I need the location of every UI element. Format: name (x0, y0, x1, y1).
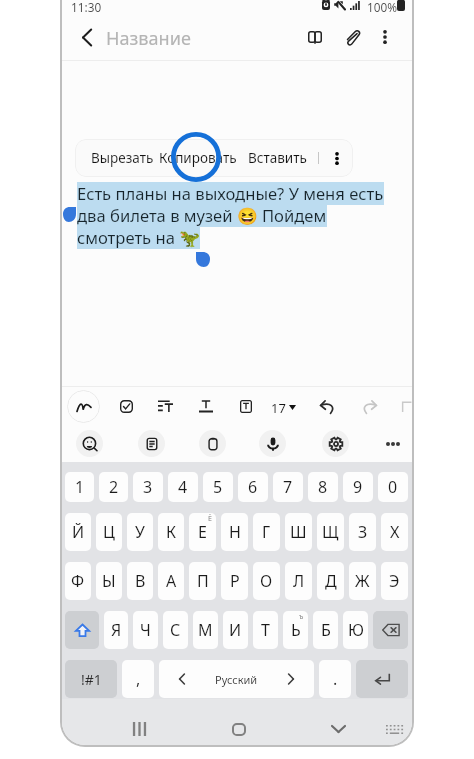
button[interactable]: Б (313, 611, 338, 649)
button[interactable]: Space, Russian (159, 660, 314, 698)
button[interactable]: Hide keyboard (320, 713, 356, 745)
button[interactable]: Handwriting (67, 390, 100, 423)
button[interactable]: , (122, 660, 154, 698)
button[interactable]: У (127, 513, 153, 551)
button[interactable]: Е (189, 513, 216, 551)
staticText: Б (321, 619, 331, 641)
button[interactable]: Expand (390, 390, 412, 423)
button[interactable]: Ш (285, 513, 312, 551)
button[interactable]: Shift (65, 611, 99, 649)
button[interactable]: Копировать (156, 139, 240, 177)
button[interactable]: Attach (338, 23, 366, 51)
button[interactable]: Н (221, 513, 248, 551)
button[interactable]: Paragraph style (149, 390, 182, 423)
button[interactable]: Home (221, 713, 257, 745)
button[interactable]: Enter (356, 660, 408, 698)
button[interactable]: Switch keyboard (376, 713, 412, 745)
staticText: Т (261, 619, 270, 641)
button[interactable]: Т (253, 611, 278, 649)
button[interactable]: 6 (238, 472, 268, 502)
button[interactable]: !#1 (65, 660, 117, 698)
button[interactable]: З (349, 513, 376, 551)
button[interactable]: Й (65, 513, 91, 551)
button[interactable]: Back (73, 23, 101, 51)
button[interactable]: 4 (168, 472, 198, 502)
button[interactable]: Settings (322, 430, 349, 457)
button[interactable]: Reader view (301, 23, 329, 51)
button[interactable]: Ы (96, 562, 122, 600)
button[interactable]: Clipboard (199, 430, 226, 457)
button[interactable]: И (223, 611, 248, 649)
button[interactable]: 7 (273, 472, 303, 502)
button[interactable]: Р (221, 562, 248, 600)
button[interactable]: 17 (271, 399, 296, 415)
button[interactable]: С (163, 611, 188, 649)
staticText: ъ (299, 612, 304, 622)
button[interactable]: 5 (203, 472, 233, 502)
button[interactable]: Вырезать (89, 139, 155, 177)
button[interactable]: Ь (283, 611, 308, 649)
staticText: Е (198, 521, 207, 543)
button[interactable]: Д (317, 562, 344, 600)
staticText: Д (325, 570, 337, 592)
button[interactable]: Х (381, 513, 408, 551)
button[interactable]: Ф (65, 562, 91, 600)
staticText: !#1 (81, 670, 102, 689)
button[interactable]: . (319, 660, 351, 698)
button[interactable]: 9 (343, 472, 373, 502)
button[interactable]: Voice input (259, 430, 286, 457)
button[interactable]: П (189, 562, 216, 600)
button[interactable]: Recents (121, 713, 157, 745)
staticText: 0 (388, 476, 398, 498)
button[interactable]: Г (253, 513, 280, 551)
staticText: Ю (348, 619, 364, 641)
staticText: В (135, 570, 146, 592)
staticText: М (198, 619, 213, 641)
staticText: Ы (102, 570, 116, 592)
staticText: Э (389, 570, 400, 592)
staticText: , (136, 668, 141, 690)
staticText: 3 (143, 476, 153, 498)
button[interactable]: Л (285, 562, 312, 600)
button[interactable]: Ю (343, 611, 368, 649)
button[interactable]: Вставить (244, 139, 310, 177)
button[interactable]: Ж (349, 562, 376, 600)
button[interactable]: В (127, 562, 153, 600)
button[interactable]: Checklist (110, 390, 143, 423)
staticText: Ё (208, 514, 212, 524)
staticText: Есть планы на выходные? У меня есть (77, 182, 384, 205)
button[interactable]: Ч (133, 611, 158, 649)
button[interactable]: Undo (311, 390, 344, 423)
button[interactable]: О (253, 562, 280, 600)
button[interactable]: Emoji (76, 430, 103, 457)
button[interactable]: Text box (229, 390, 262, 423)
staticText: 11:30 (71, 0, 102, 15)
staticText: 2 (109, 476, 119, 498)
button[interactable]: Э (381, 562, 408, 600)
button[interactable]: Ц (96, 513, 122, 551)
staticText: Р (230, 570, 240, 592)
button[interactable]: 2 (99, 472, 128, 502)
staticText: 5 (213, 476, 223, 498)
button[interactable]: К (158, 513, 184, 551)
button[interactable]: А (158, 562, 184, 600)
staticText: 9 (353, 476, 363, 498)
button[interactable]: Backspace (373, 611, 408, 649)
button[interactable]: М (193, 611, 218, 649)
button[interactable]: Text style (189, 390, 222, 423)
staticText: Ш (290, 521, 307, 543)
button[interactable]: Notes (138, 430, 165, 457)
button[interactable]: 3 (133, 472, 163, 502)
button[interactable]: Redo (353, 390, 386, 423)
button[interactable]: More options (371, 23, 399, 51)
button[interactable]: More (379, 430, 406, 457)
button[interactable]: 0 (378, 472, 408, 502)
staticText: Ф (71, 570, 85, 592)
staticText: 7 (283, 476, 293, 498)
staticText: . (333, 668, 338, 690)
button[interactable]: Я (104, 611, 128, 649)
button[interactable]: 8 (308, 472, 338, 502)
button[interactable]: 1 (65, 472, 94, 502)
button[interactable]: Щ (317, 513, 344, 551)
button[interactable]: More (326, 139, 347, 177)
